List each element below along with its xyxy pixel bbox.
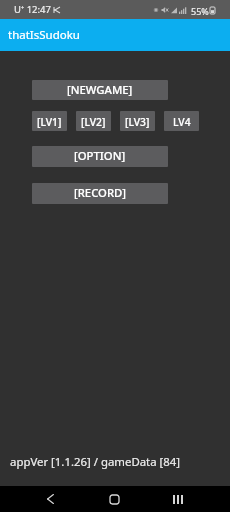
staticText: [OPTION] — [74, 148, 126, 163]
staticText: [LV2] — [81, 115, 106, 129]
button[interactable]: Back — [25, 486, 75, 512]
staticText: [NEWGAME] — [67, 82, 133, 97]
staticText: [LV1] — [37, 115, 62, 129]
staticText: U⁺ 12:47 — [14, 3, 51, 16]
staticText: appVer [1.1.26] / gameData [84] — [10, 454, 181, 470]
staticText: thatIsSudoku — [8, 27, 80, 43]
button[interactable]: Recent apps — [146, 486, 210, 512]
staticText: [LV3] — [125, 115, 150, 129]
button[interactable]: LV4 — [164, 111, 199, 131]
button[interactable]: [LV1] — [32, 111, 67, 131]
button[interactable]: [NEWGAME] — [32, 80, 168, 100]
button[interactable]: [LV3] — [120, 111, 155, 131]
button[interactable]: [OPTION] — [32, 146, 168, 167]
button[interactable]: [LV2] — [76, 111, 111, 131]
button[interactable]: Home — [82, 486, 146, 512]
button[interactable]: [RECORD] — [32, 183, 168, 204]
staticText: [RECORD] — [74, 185, 127, 200]
staticText: 55% — [191, 5, 209, 17]
staticText: LV4 — [173, 115, 191, 129]
